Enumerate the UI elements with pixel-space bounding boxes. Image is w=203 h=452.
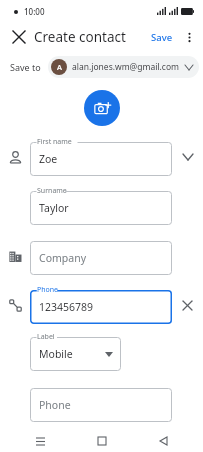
staticText: Save — [151, 31, 173, 44]
button[interactable]: Back — [153, 431, 173, 451]
staticText: Phone — [37, 285, 59, 295]
staticText: Mobile — [39, 347, 73, 361]
staticText: A — [57, 62, 62, 72]
staticText: Label — [37, 332, 55, 342]
staticText: Save to — [10, 61, 41, 73]
staticText: Label — [37, 431, 55, 441]
button[interactable]: A — [48, 56, 199, 78]
button[interactable]: Surname — [30, 186, 172, 225]
staticText: Create contact — [34, 28, 126, 46]
staticText: Company — [39, 251, 86, 265]
button[interactable]: More options — [178, 26, 200, 48]
button[interactable]: Recent apps — [30, 431, 50, 451]
button[interactable]: Phone — [30, 383, 172, 422]
button[interactable]: Label — [30, 332, 121, 371]
staticText: alan.jones.wm@gmail.com — [72, 61, 180, 73]
button[interactable]: Phone — [30, 285, 172, 324]
staticText: Zoe — [39, 152, 58, 166]
staticText: Surname — [37, 186, 67, 196]
button[interactable]: Save — [147, 28, 177, 47]
staticText: Phone — [39, 398, 71, 412]
staticText: First name — [37, 137, 72, 147]
button[interactable]: First name — [30, 137, 172, 176]
button[interactable]: Add photo — [84, 90, 120, 126]
button[interactable]: Label — [30, 431, 121, 452]
staticText: Taylor — [39, 201, 69, 215]
staticText: Work — [39, 435, 65, 449]
button[interactable]: Close — [6, 24, 32, 50]
button[interactable]: Company — [30, 236, 172, 275]
staticText: 123456789 — [39, 300, 94, 314]
button[interactable]: Clear phone — [172, 288, 203, 322]
staticText: 10:00 — [24, 6, 45, 17]
button[interactable]: Home — [92, 431, 112, 451]
button[interactable]: Expand name fields — [172, 140, 203, 174]
